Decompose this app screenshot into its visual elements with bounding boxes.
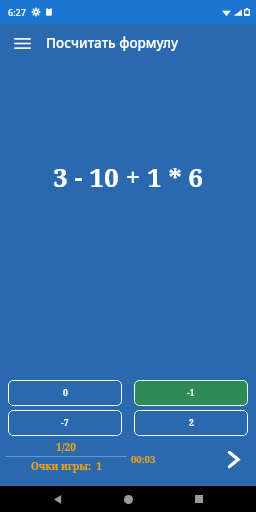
staticText: 6:27 [8, 6, 26, 18]
staticText: 3 - 10 + 1 * 6 [53, 159, 203, 194]
button[interactable]: -1 [134, 380, 248, 406]
staticText: Посчитать формулу [46, 34, 179, 52]
button[interactable]: 2 [134, 410, 248, 436]
button[interactable]: Open navigation menu [8, 29, 36, 57]
button[interactable]: Home [115, 486, 141, 512]
staticText: Очки игры: 1 [31, 459, 102, 473]
button[interactable]: Recent apps [186, 486, 212, 512]
staticText: -7 [61, 417, 69, 429]
button[interactable]: -7 [8, 410, 122, 436]
button[interactable]: Next question [218, 444, 248, 474]
staticText: 1/20 [56, 440, 76, 454]
staticText: 00:03 [131, 453, 156, 466]
staticText: 2 [189, 417, 194, 429]
staticText: -1 [187, 387, 195, 399]
button[interactable]: 0 [8, 380, 122, 406]
staticText: 0 [63, 387, 68, 399]
button[interactable]: Back [45, 486, 71, 512]
